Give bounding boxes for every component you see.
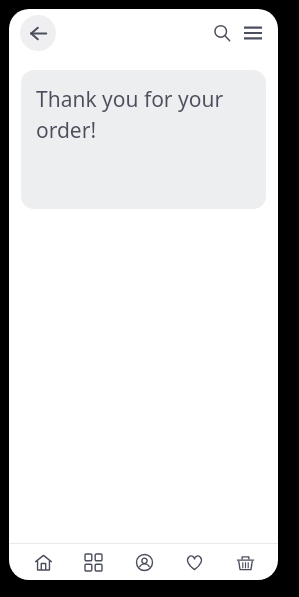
button[interactable]: Categories — [76, 545, 110, 579]
button[interactable]: Menu — [238, 18, 268, 48]
button[interactable]: Favorites — [177, 545, 211, 579]
button[interactable]: Search — [207, 18, 237, 48]
button[interactable]: Account — [127, 545, 161, 579]
button[interactable]: Cart — [228, 545, 262, 579]
staticText: Thank you for your order! — [36, 85, 252, 144]
button[interactable]: Back — [20, 15, 56, 51]
button[interactable]: Home — [26, 545, 60, 579]
button[interactable]: Thank you for your order! — [21, 70, 266, 209]
